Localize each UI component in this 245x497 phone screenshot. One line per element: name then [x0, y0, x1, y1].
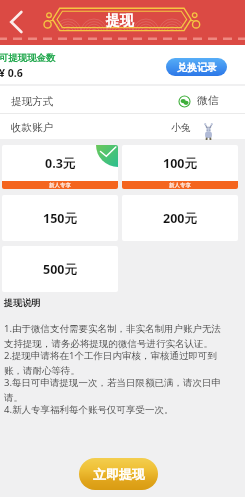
staticText: 提现方式 [11, 95, 53, 108]
button[interactable]: 150元 [2, 195, 118, 241]
staticText: 3.每日可申请提现一次，若当日限额已满，请次日申请。 [4, 376, 228, 403]
button[interactable]: 兑换记录 [166, 58, 227, 76]
staticText: 150元 [43, 210, 77, 227]
button[interactable]: 立即提现 [79, 458, 158, 490]
staticText: 200元 [163, 210, 197, 227]
staticText: ¥ 0.6 [0, 66, 23, 80]
staticText: 提现说明 [4, 297, 41, 309]
staticText: 4.新人专享福利每个账号仅可享受一次。 [4, 403, 228, 416]
staticText: 100元 [163, 155, 197, 172]
button[interactable]: 收款账户 [0, 114, 245, 139]
staticText: 新人专享 [169, 182, 191, 189]
staticText: 立即提现 [93, 466, 145, 482]
button[interactable]: 100元 [122, 145, 238, 189]
staticText: 2.提现申请将在1个工作日内审核，审核通过即可到账，请耐心等待。 [4, 349, 228, 376]
staticText: 微信 [197, 94, 219, 108]
staticText: 收款账户 [11, 121, 53, 134]
button[interactable]: 500元 [2, 246, 118, 292]
button[interactable]: 提现方式 [0, 86, 245, 113]
staticText: 新人专享 [49, 182, 71, 189]
staticText: 小兔 [171, 122, 191, 134]
staticText: 1.由于微信支付需要实名制，非实名制用户账户无法支持提现，请务必将提现的微信号进… [4, 322, 228, 349]
button[interactable]: 0.3元 [2, 145, 118, 189]
button[interactable]: Back [0, 6, 32, 38]
staticText: 500元 [43, 261, 77, 278]
staticText: 可提现现金数 [0, 52, 56, 64]
staticText: 0.3元 [45, 155, 76, 172]
staticText: 兑换记录 [177, 61, 217, 74]
button[interactable]: 200元 [122, 195, 238, 241]
staticText: 提现 [106, 12, 134, 30]
